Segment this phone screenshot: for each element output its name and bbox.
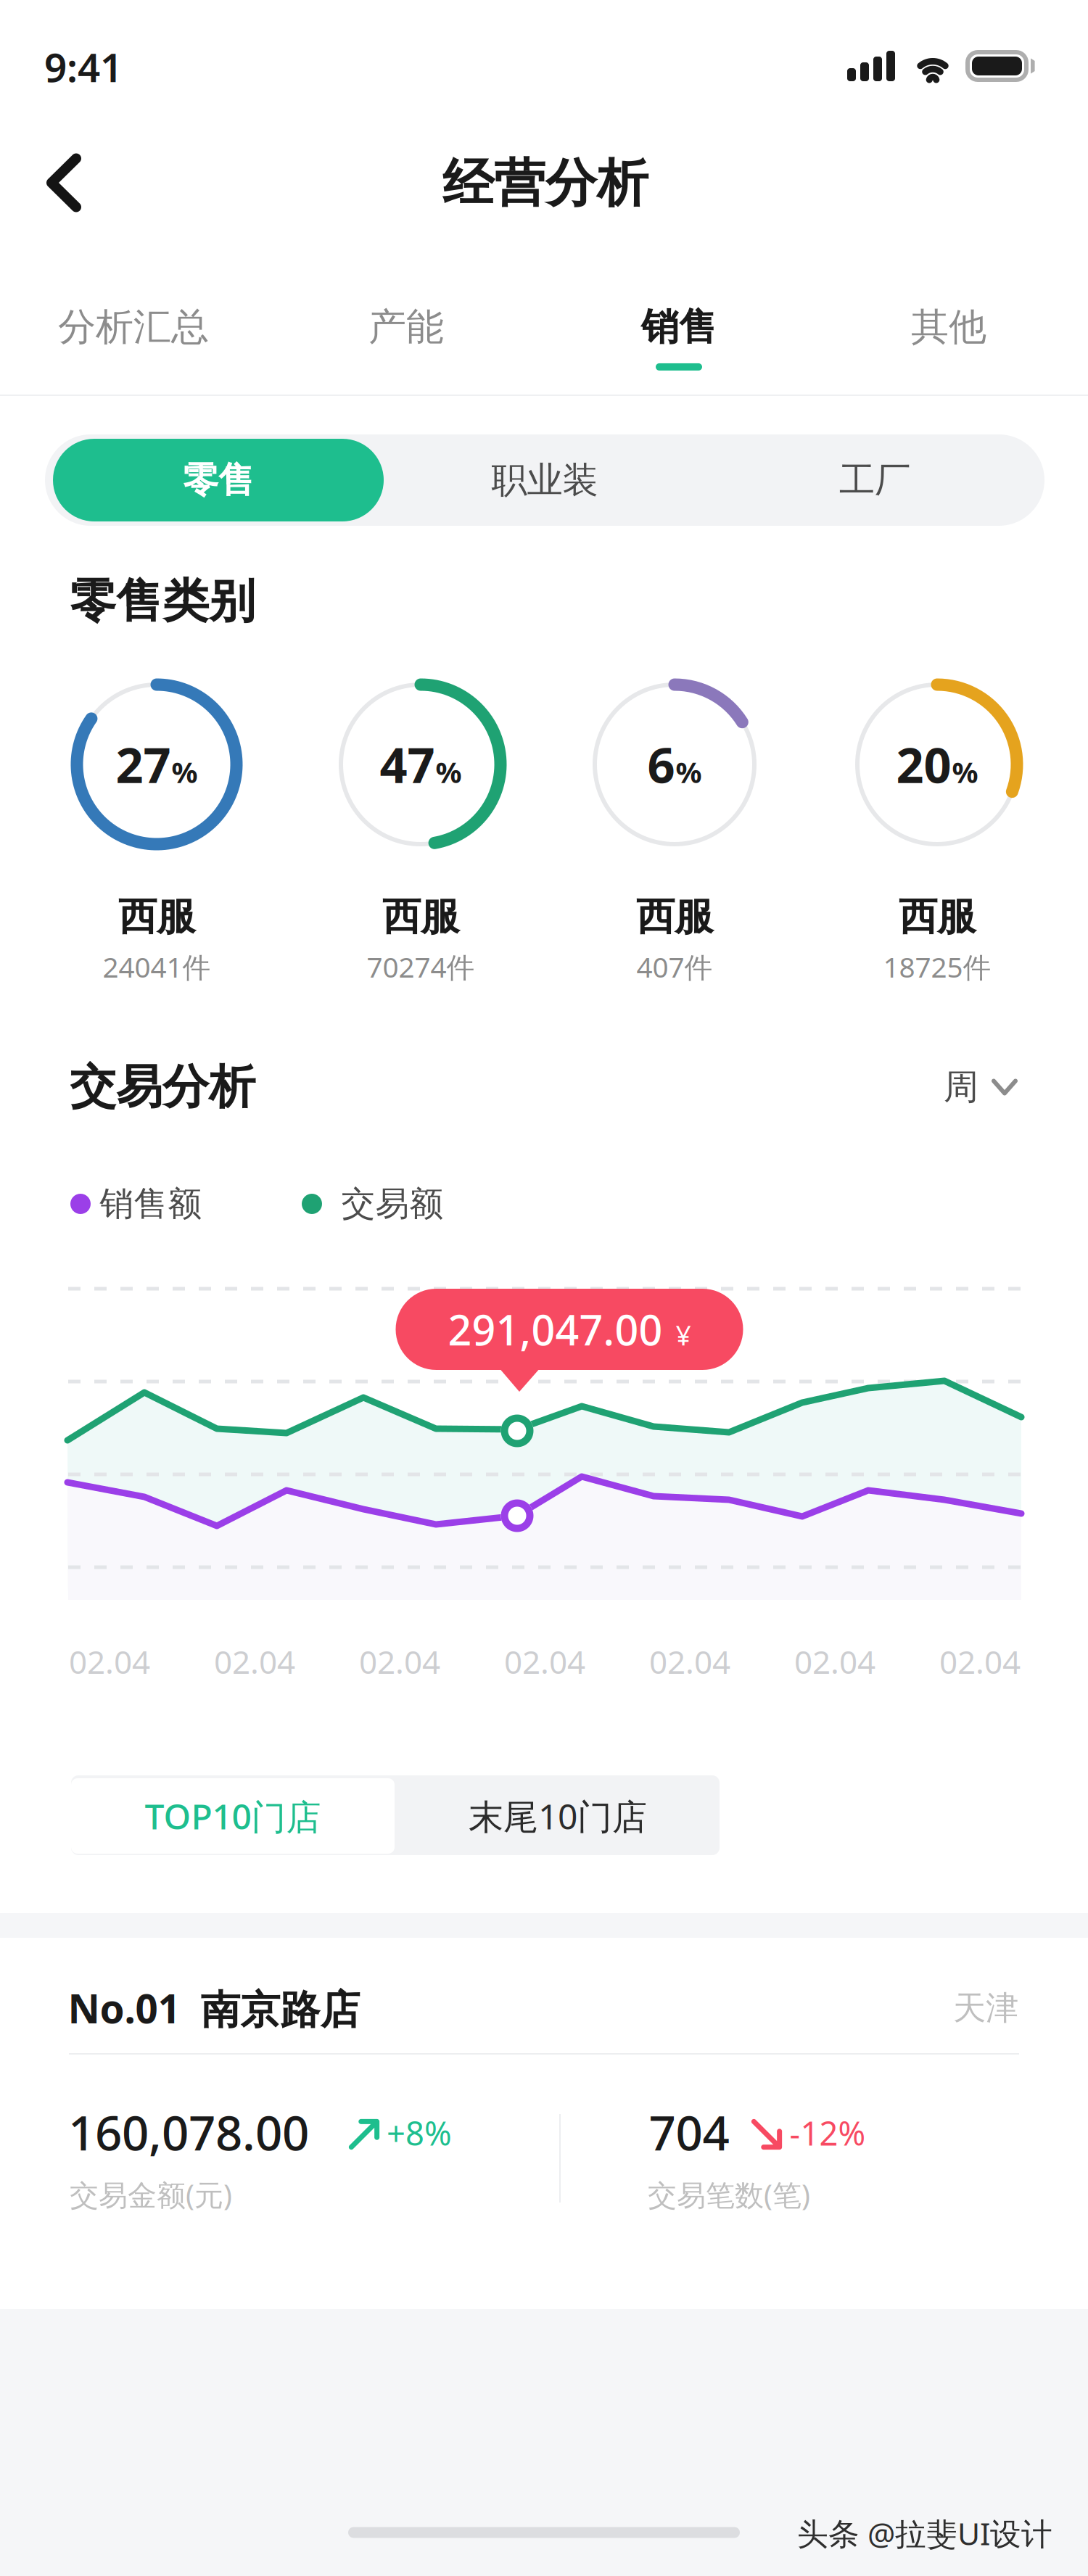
staticText: 704 — [649, 2101, 729, 2164]
staticText: 02.04 — [649, 1640, 730, 1683]
button[interactable]: 周 — [934, 1056, 1028, 1119]
staticText: 产能 — [368, 304, 444, 350]
staticText: 末尾10门店 — [469, 1793, 647, 1839]
staticText: +8% — [387, 2111, 452, 2155]
staticText: 交易分析 — [70, 1059, 255, 1116]
staticText: 02.04 — [504, 1640, 585, 1683]
button[interactable]: Back — [12, 121, 115, 245]
staticText: 291,047.00 — [448, 1302, 663, 1357]
staticText: 天津 — [953, 1988, 1018, 2028]
staticText: 02.04 — [794, 1640, 875, 1683]
button[interactable]: 末尾10门店 — [396, 1778, 720, 1854]
staticText: 27 — [116, 732, 171, 796]
staticText: 交易金额(元) — [70, 2175, 232, 2214]
staticText: 6 — [647, 732, 675, 796]
staticText: ¥ — [676, 1317, 691, 1353]
button[interactable]: 零售 — [53, 439, 384, 521]
staticText: 头条 @拉斐UI设计 — [797, 2513, 1052, 2554]
staticText: 24041件 — [103, 948, 211, 985]
staticText: 70274件 — [367, 948, 475, 985]
staticText: 9:41 — [44, 40, 123, 93]
staticText: -12% — [790, 2111, 866, 2155]
staticText: 02.04 — [69, 1640, 150, 1683]
staticText: 西服 — [636, 893, 713, 940]
staticText: 职业装 — [491, 458, 598, 502]
staticText: 销售额 — [100, 1183, 202, 1225]
staticText: 02.04 — [939, 1640, 1021, 1683]
staticText: 西服 — [382, 893, 459, 940]
button[interactable]: 产能 — [287, 293, 526, 381]
staticText: % — [172, 753, 198, 791]
staticText: 407件 — [636, 948, 713, 985]
staticText: No.01 南京路店 — [68, 1982, 360, 2035]
staticText: 西服 — [899, 893, 976, 940]
staticText: 交易笔数(笔) — [648, 2175, 810, 2214]
staticText: 47 — [380, 732, 435, 796]
staticText: 西服 — [118, 893, 195, 940]
staticText: 其他 — [911, 304, 986, 350]
staticText: 销售 — [641, 304, 717, 350]
button[interactable]: 工厂 — [709, 439, 1040, 521]
staticText: 零售 — [183, 458, 254, 502]
staticText: TOP10门店 — [145, 1793, 321, 1839]
staticText: 周 — [944, 1066, 978, 1109]
staticText: % — [676, 753, 702, 791]
staticText: 02.04 — [214, 1640, 295, 1683]
staticText: 02.04 — [359, 1640, 440, 1683]
staticText: 160,078.00 — [68, 2101, 309, 2164]
button[interactable]: 分析汇总 — [14, 293, 253, 381]
staticText: 经营分析 — [442, 152, 648, 215]
staticText: % — [952, 753, 978, 791]
button[interactable]: 其他 — [829, 293, 1068, 381]
button[interactable]: 销售 — [559, 293, 799, 381]
staticText: 交易额 — [341, 1183, 444, 1225]
staticText: 零售类别 — [70, 573, 255, 630]
button[interactable]: 职业装 — [379, 439, 710, 521]
staticText: 分析汇总 — [58, 304, 209, 350]
staticText: % — [436, 753, 462, 791]
staticText: 20 — [896, 732, 951, 796]
staticText: 18725件 — [883, 948, 991, 985]
staticText: 工厂 — [839, 458, 910, 502]
button[interactable]: TOP10门店 — [71, 1778, 395, 1854]
